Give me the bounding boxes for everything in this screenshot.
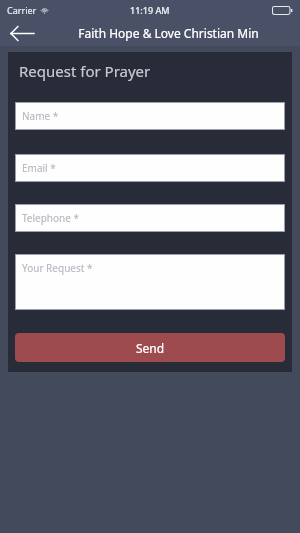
button[interactable]: Name * xyxy=(15,102,285,130)
button[interactable]: Telephone * xyxy=(15,204,285,232)
button[interactable]: Back xyxy=(0,20,44,46)
staticText: Carrier xyxy=(7,4,37,16)
staticText: Email * xyxy=(22,161,56,175)
staticText: Your Request * xyxy=(22,261,93,275)
button[interactable]: Your Request * xyxy=(15,254,285,310)
staticText: Name * xyxy=(22,109,59,123)
staticText: 11:19 AM xyxy=(130,4,170,16)
button[interactable]: Email * xyxy=(15,154,285,182)
staticText: Faith Hope & Love Christian Min xyxy=(78,25,259,41)
staticText: Request for Prayer xyxy=(19,61,151,81)
staticText: Telephone * xyxy=(22,211,80,225)
staticText: Send xyxy=(136,340,165,356)
button[interactable]: Send xyxy=(15,333,285,362)
